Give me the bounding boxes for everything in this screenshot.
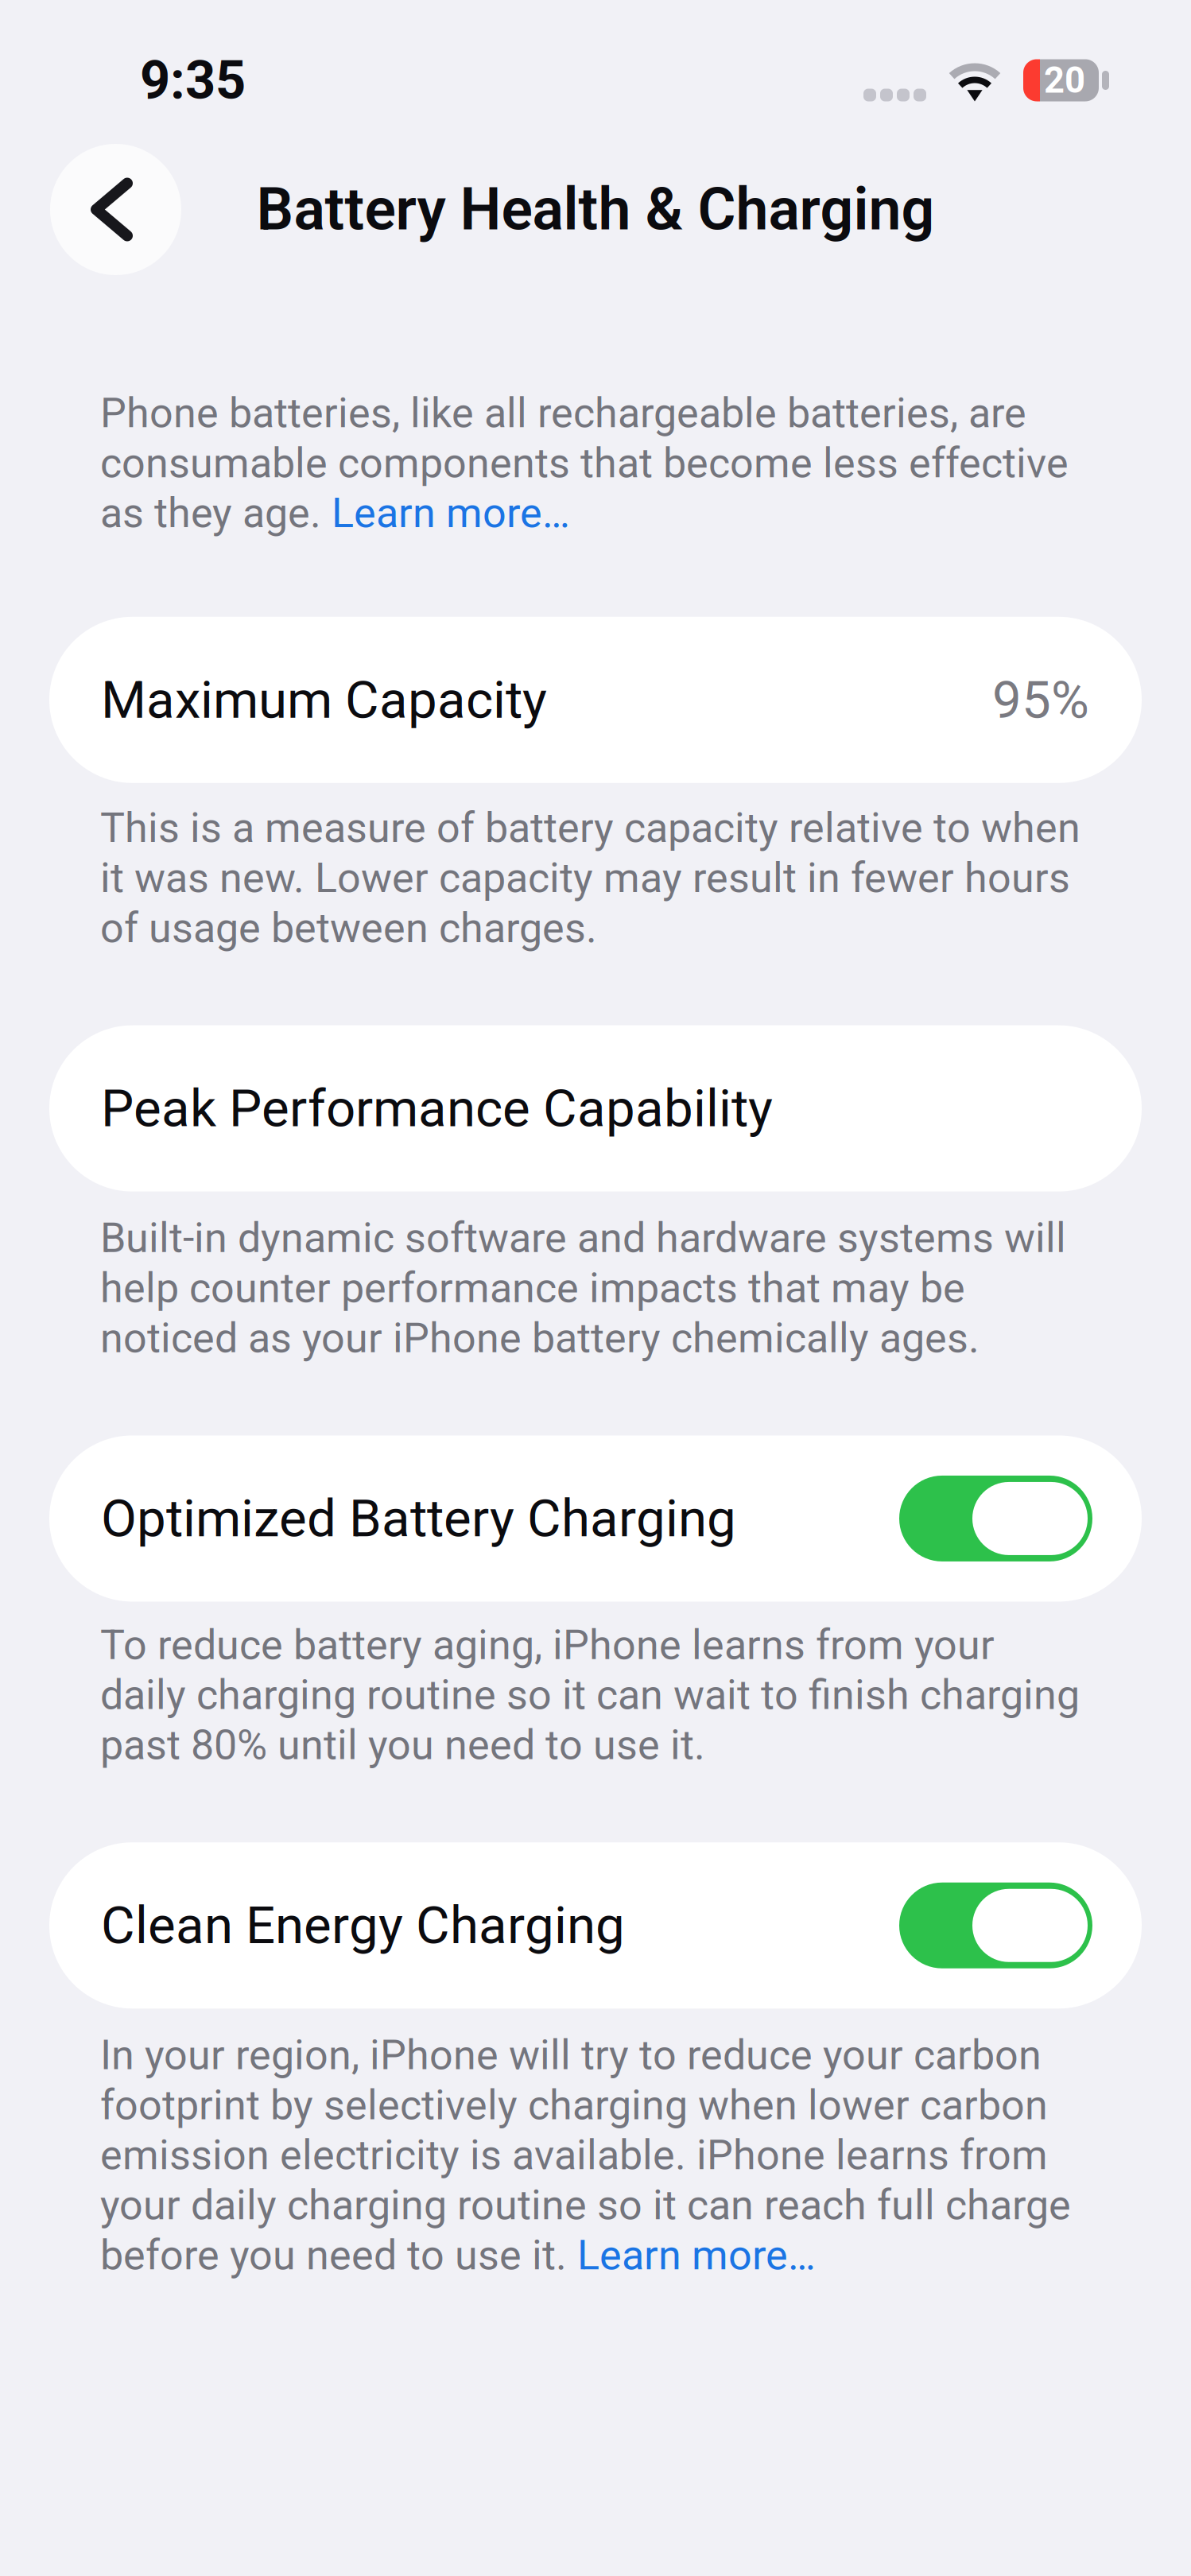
staticText: In your region, iPhone will try to reduc… (100, 2031, 1071, 2279)
staticText: Built-in dynamic software and hardware s… (100, 1214, 1066, 1362)
staticText: 95% (992, 669, 1089, 730)
staticText: This is a measure of battery capacity re… (100, 804, 1080, 952)
staticText: 20 (1044, 59, 1085, 101)
button[interactable]: Maximum Capacity (49, 617, 1142, 783)
staticText: Maximum Capacity (101, 669, 547, 730)
button[interactable]: Clean Energy Charging (49, 1842, 1142, 2008)
button[interactable]: Peak Performance Capability (49, 1025, 1142, 1191)
button[interactable]: Optimized Battery Charging (49, 1435, 1142, 1602)
button[interactable]: Back (50, 144, 181, 275)
staticText: Battery Health & Charging (256, 175, 935, 244)
staticText: Clean Energy Charging (101, 1895, 625, 1956)
staticText: 9:35 (140, 49, 246, 111)
staticText: Phone batteries, like all rechargeable b… (100, 389, 1069, 537)
staticText: Optimized Battery Charging (101, 1488, 736, 1549)
staticText: Peak Performance Capability (101, 1078, 773, 1139)
staticText: To reduce battery aging, iPhone learns f… (100, 1621, 1080, 1769)
